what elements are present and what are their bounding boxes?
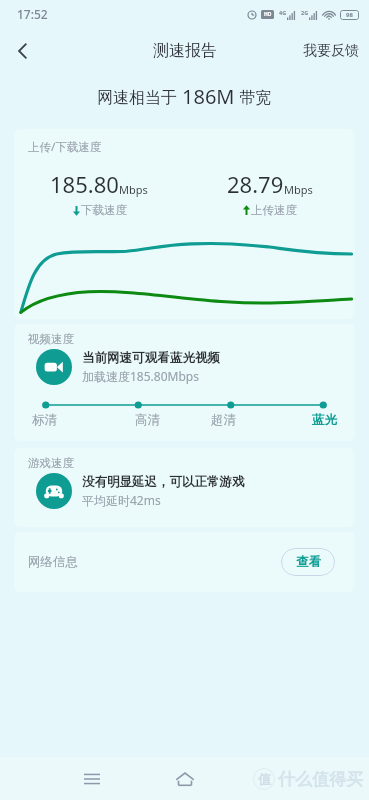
staticText: 上传/下载速度 <box>28 139 102 155</box>
staticText: 值 <box>258 771 271 787</box>
staticText: 17:52 <box>17 6 48 22</box>
staticText: 186M <box>182 83 235 110</box>
staticText: 下载速度 <box>81 203 127 217</box>
staticText: 185.80 <box>50 169 119 199</box>
staticText: 28.79 <box>227 169 284 199</box>
button[interactable]: Back <box>0 28 46 74</box>
staticText: 查看 <box>296 554 321 570</box>
staticText: Mbps <box>284 182 313 197</box>
staticText: 视频速度 <box>28 332 74 346</box>
staticText: 没有明显延迟，可以正常游戏 <box>82 474 245 490</box>
staticText: 4G <box>279 9 287 16</box>
button[interactable]: 我要反馈 <box>303 42 359 60</box>
staticText: 超清 <box>211 412 236 428</box>
staticText: 网速相当于 <box>97 86 182 108</box>
staticText: 加载速度185.80Mbps <box>82 368 199 384</box>
staticText: 标清 <box>32 412 57 428</box>
staticText: 我要反馈 <box>303 42 359 60</box>
staticText: 网络信息 <box>28 554 78 570</box>
button[interactable]: Menu <box>72 759 112 799</box>
staticText: 蓝光视频 <box>170 350 220 366</box>
button[interactable]: Home <box>165 759 205 799</box>
staticText: 带宽 <box>235 86 272 108</box>
staticText: HD <box>264 11 272 18</box>
staticText: 平均延时42ms <box>82 492 161 508</box>
staticText: Mbps <box>119 182 148 197</box>
staticText: 什么值得买 <box>278 769 363 790</box>
staticText: 当前网速可观看 <box>82 350 170 366</box>
staticText: 高清 <box>135 412 160 428</box>
staticText: 98 <box>346 11 353 19</box>
staticText: 测速报告 <box>153 41 217 61</box>
staticText: 游戏速度 <box>28 456 74 470</box>
staticText: 上传速度 <box>251 203 297 217</box>
staticText: 蓝光 <box>312 412 337 428</box>
button[interactable]: 查看 <box>281 548 335 576</box>
staticText: 2G <box>301 9 309 16</box>
